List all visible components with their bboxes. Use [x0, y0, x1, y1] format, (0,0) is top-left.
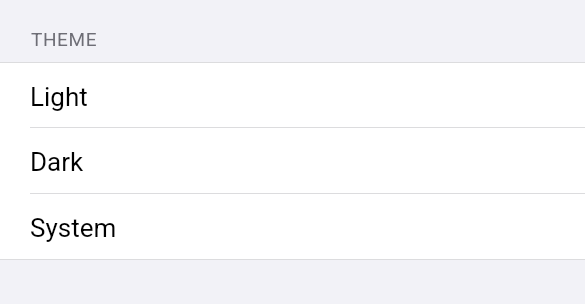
button[interactable]: Dark	[0, 128, 585, 193]
staticText: THEME	[31, 28, 98, 50]
staticText: Dark	[30, 147, 84, 177]
button[interactable]: System	[0, 194, 585, 259]
staticText: Light	[30, 82, 88, 112]
button[interactable]: Light	[0, 63, 585, 127]
staticText: System	[30, 213, 117, 243]
